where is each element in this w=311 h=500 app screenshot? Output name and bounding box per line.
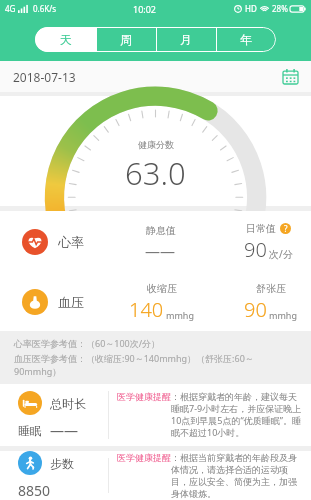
staticText: 舒张压: [256, 282, 286, 295]
staticText: 收缩压: [147, 282, 177, 295]
button[interactable]: Help: [280, 223, 291, 234]
staticText: 医学健康提醒: [117, 452, 171, 463]
other: Blood pressure: [22, 289, 48, 315]
staticText: 心率: [58, 234, 84, 250]
staticText: 血压: [58, 294, 84, 310]
staticText: 90: [244, 296, 267, 323]
staticText: 年: [240, 32, 252, 47]
staticText: 周: [120, 32, 132, 47]
staticText: 静息值: [146, 224, 176, 237]
staticText: 医学健康提醒: [117, 391, 171, 402]
other: Calendar: [283, 69, 298, 84]
staticText: 4G: [5, 3, 16, 14]
staticText: 睡眠: [18, 423, 42, 438]
button[interactable]: 月: [156, 27, 216, 52]
button[interactable]: Heart rate: [0, 211, 311, 273]
staticText: 总时长: [50, 396, 86, 411]
staticText: 2018-07-13: [13, 69, 76, 85]
staticText: mmhg: [166, 309, 194, 321]
staticText: 心率医学参考值：（60～100次/分）: [14, 337, 161, 349]
other: Sleep: [18, 391, 42, 415]
staticText: 90: [244, 236, 267, 263]
button[interactable]: Steps: [0, 451, 311, 500]
staticText: HD: [245, 3, 257, 14]
staticText: 次/分: [269, 247, 293, 261]
button[interactable]: Sleep: [0, 384, 311, 446]
staticText: 步数: [50, 456, 74, 471]
staticText: 140: [129, 296, 164, 323]
staticText: ——: [145, 241, 176, 261]
button[interactable]: 周: [96, 27, 156, 52]
staticText: 健康分数: [138, 139, 174, 150]
other: Heart rate: [22, 229, 48, 255]
other: Steps: [18, 451, 42, 475]
staticText: 28%: [272, 3, 288, 14]
staticText: ：根据当前穿戴者的年龄段及身体情况，请选择合适的运动项目，应以安全、简便为主，加…: [171, 452, 303, 500]
staticText: 8850: [18, 481, 51, 500]
staticText: ：根据穿戴者的年龄，建议每天睡眠7-9小时左右，并应保证晚上10点到早晨5点的“…: [171, 391, 303, 439]
button[interactable]: 天: [35, 27, 96, 52]
staticText: 63.0: [125, 152, 186, 194]
staticText: ——: [50, 421, 78, 440]
staticText: mmhg: [269, 309, 297, 321]
staticText: 0.6K/s: [33, 3, 57, 14]
button[interactable]: 年: [216, 27, 276, 52]
staticText: 血压医学参考值：（收缩压:90～140mmhg）（舒张压:60～90mmhg）: [14, 352, 297, 377]
staticText: 10:02: [133, 3, 157, 15]
button[interactable]: Blood pressure: [0, 273, 311, 331]
staticText: 天: [60, 32, 72, 47]
button[interactable]: 2018-07-13: [0, 61, 311, 92]
staticText: 月: [180, 32, 192, 47]
staticText: ?: [284, 223, 288, 234]
staticText: 日常值: [246, 222, 276, 235]
